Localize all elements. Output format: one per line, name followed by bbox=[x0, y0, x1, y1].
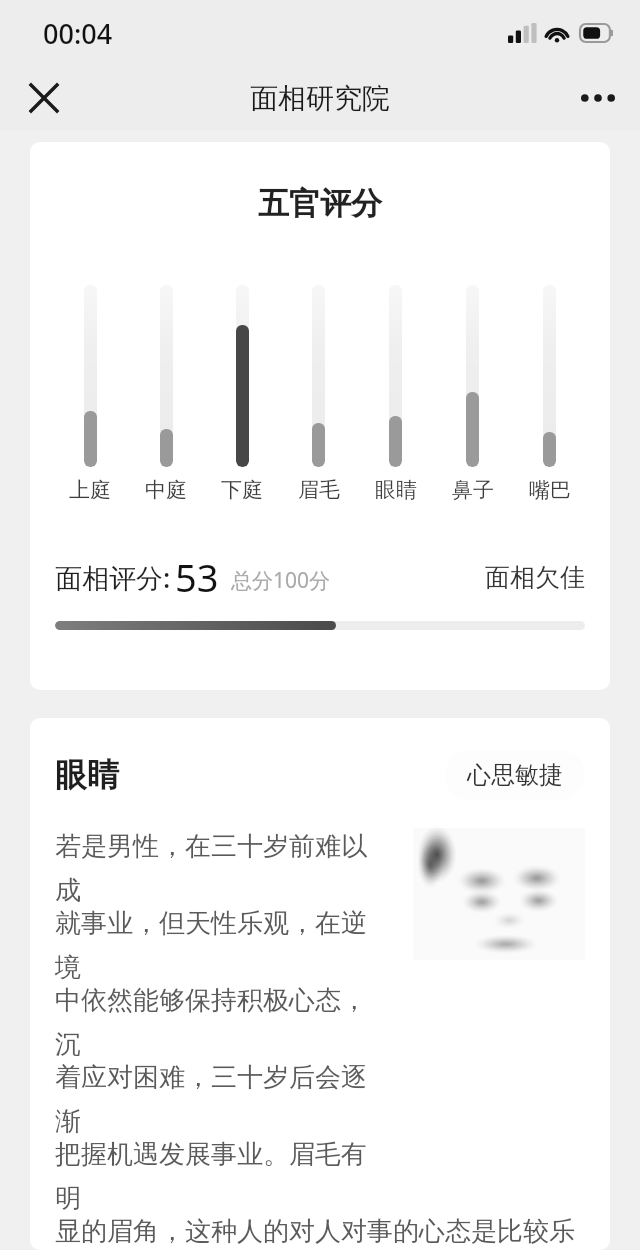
staticText: 若是男性，在三十岁前难以成 bbox=[55, 830, 375, 907]
staticText: 把握机遇发展事业。眉毛有明 bbox=[55, 1138, 375, 1215]
staticText: 眼睛 bbox=[375, 477, 417, 503]
button[interactable]: More options bbox=[574, 74, 622, 122]
staticText: 就事业，但天性乐观，在逆境 bbox=[55, 907, 375, 984]
staticText: 53 bbox=[175, 551, 219, 603]
staticText: 面相评分: bbox=[55, 559, 171, 596]
staticText: 显的眉角，这种人的对人对事的心态是比较乐观而 bbox=[55, 1215, 585, 1250]
button[interactable]: 眼睛 bbox=[30, 718, 610, 1250]
staticText: 00:04 bbox=[43, 15, 113, 52]
staticText: 中依然能够保持积极心态，沉 bbox=[55, 984, 375, 1061]
button[interactable]: Close bbox=[20, 74, 68, 122]
staticText: 面相研究院 bbox=[250, 81, 390, 116]
staticText: 着应对困难，三十岁后会逐渐 bbox=[55, 1061, 375, 1138]
staticText: 心思敏捷 bbox=[467, 760, 563, 790]
staticText: 上庭 bbox=[69, 477, 111, 503]
staticText: 眼睛 bbox=[55, 755, 119, 795]
staticText: 下庭 bbox=[221, 477, 263, 503]
staticText: 嘴巴 bbox=[529, 477, 571, 503]
staticText: 鼻子 bbox=[452, 477, 494, 503]
staticText: 五官评分 bbox=[30, 184, 610, 223]
staticText: 眉毛 bbox=[298, 477, 340, 503]
staticText: 中庭 bbox=[145, 477, 187, 503]
staticText: 总分100分 bbox=[231, 566, 331, 595]
button[interactable]: 心思敏捷 bbox=[445, 750, 585, 800]
button[interactable]: 五官评分 bbox=[30, 142, 610, 690]
staticText: 面相欠佳 bbox=[485, 562, 585, 593]
